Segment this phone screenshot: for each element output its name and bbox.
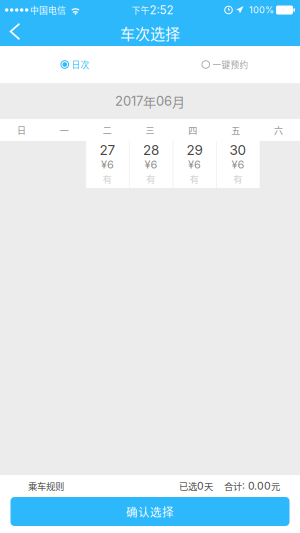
staticText: 三	[145, 123, 154, 136]
staticText: 2017	[115, 93, 143, 109]
staticText: 元	[271, 479, 280, 493]
staticText: 100%	[249, 4, 274, 15]
staticText: 二	[103, 123, 112, 136]
staticText: 有	[146, 172, 156, 185]
staticText: ¥6	[188, 158, 201, 171]
staticText: 下午	[131, 4, 149, 16]
staticText: 乘车规则	[28, 479, 64, 493]
staticText: 有	[189, 172, 199, 185]
button[interactable]: 乘车规则	[0, 475, 74, 497]
staticText: 30	[229, 142, 246, 158]
button[interactable]: 日次	[0, 46, 150, 83]
staticText: 有	[102, 172, 112, 185]
staticText: ¥6	[231, 158, 244, 171]
staticText: 06	[156, 93, 172, 109]
button[interactable]: 一键预约	[150, 46, 300, 83]
staticText: ¥6	[101, 158, 114, 171]
staticText: 四	[188, 123, 197, 136]
staticText: 日	[17, 123, 26, 136]
staticText: 中国电信	[30, 4, 66, 16]
staticText: : 0.00	[242, 480, 271, 492]
staticText: 29	[186, 142, 202, 158]
staticText: 0	[197, 480, 204, 492]
staticText: 2:52	[149, 3, 173, 17]
staticText: ¥6	[144, 158, 157, 171]
staticText: 已选	[179, 479, 197, 493]
staticText: 合计	[224, 479, 242, 493]
staticText: 月	[172, 92, 185, 110]
staticText: 确认选择	[126, 503, 174, 520]
button[interactable]: 返回	[0, 20, 30, 46]
staticText: 27	[99, 142, 115, 158]
button[interactable]: 确认选择	[10, 497, 289, 526]
staticText: 28	[143, 142, 159, 158]
staticText: 五	[231, 123, 240, 136]
staticText: 年	[143, 92, 156, 110]
staticText: 车次选择	[120, 22, 180, 44]
staticText: 有	[233, 172, 243, 185]
staticText: 天	[204, 479, 213, 493]
staticText: 日次	[71, 58, 89, 71]
staticText: 一	[60, 123, 69, 136]
staticText: 六	[274, 123, 283, 136]
staticText: 一键预约	[212, 58, 248, 71]
